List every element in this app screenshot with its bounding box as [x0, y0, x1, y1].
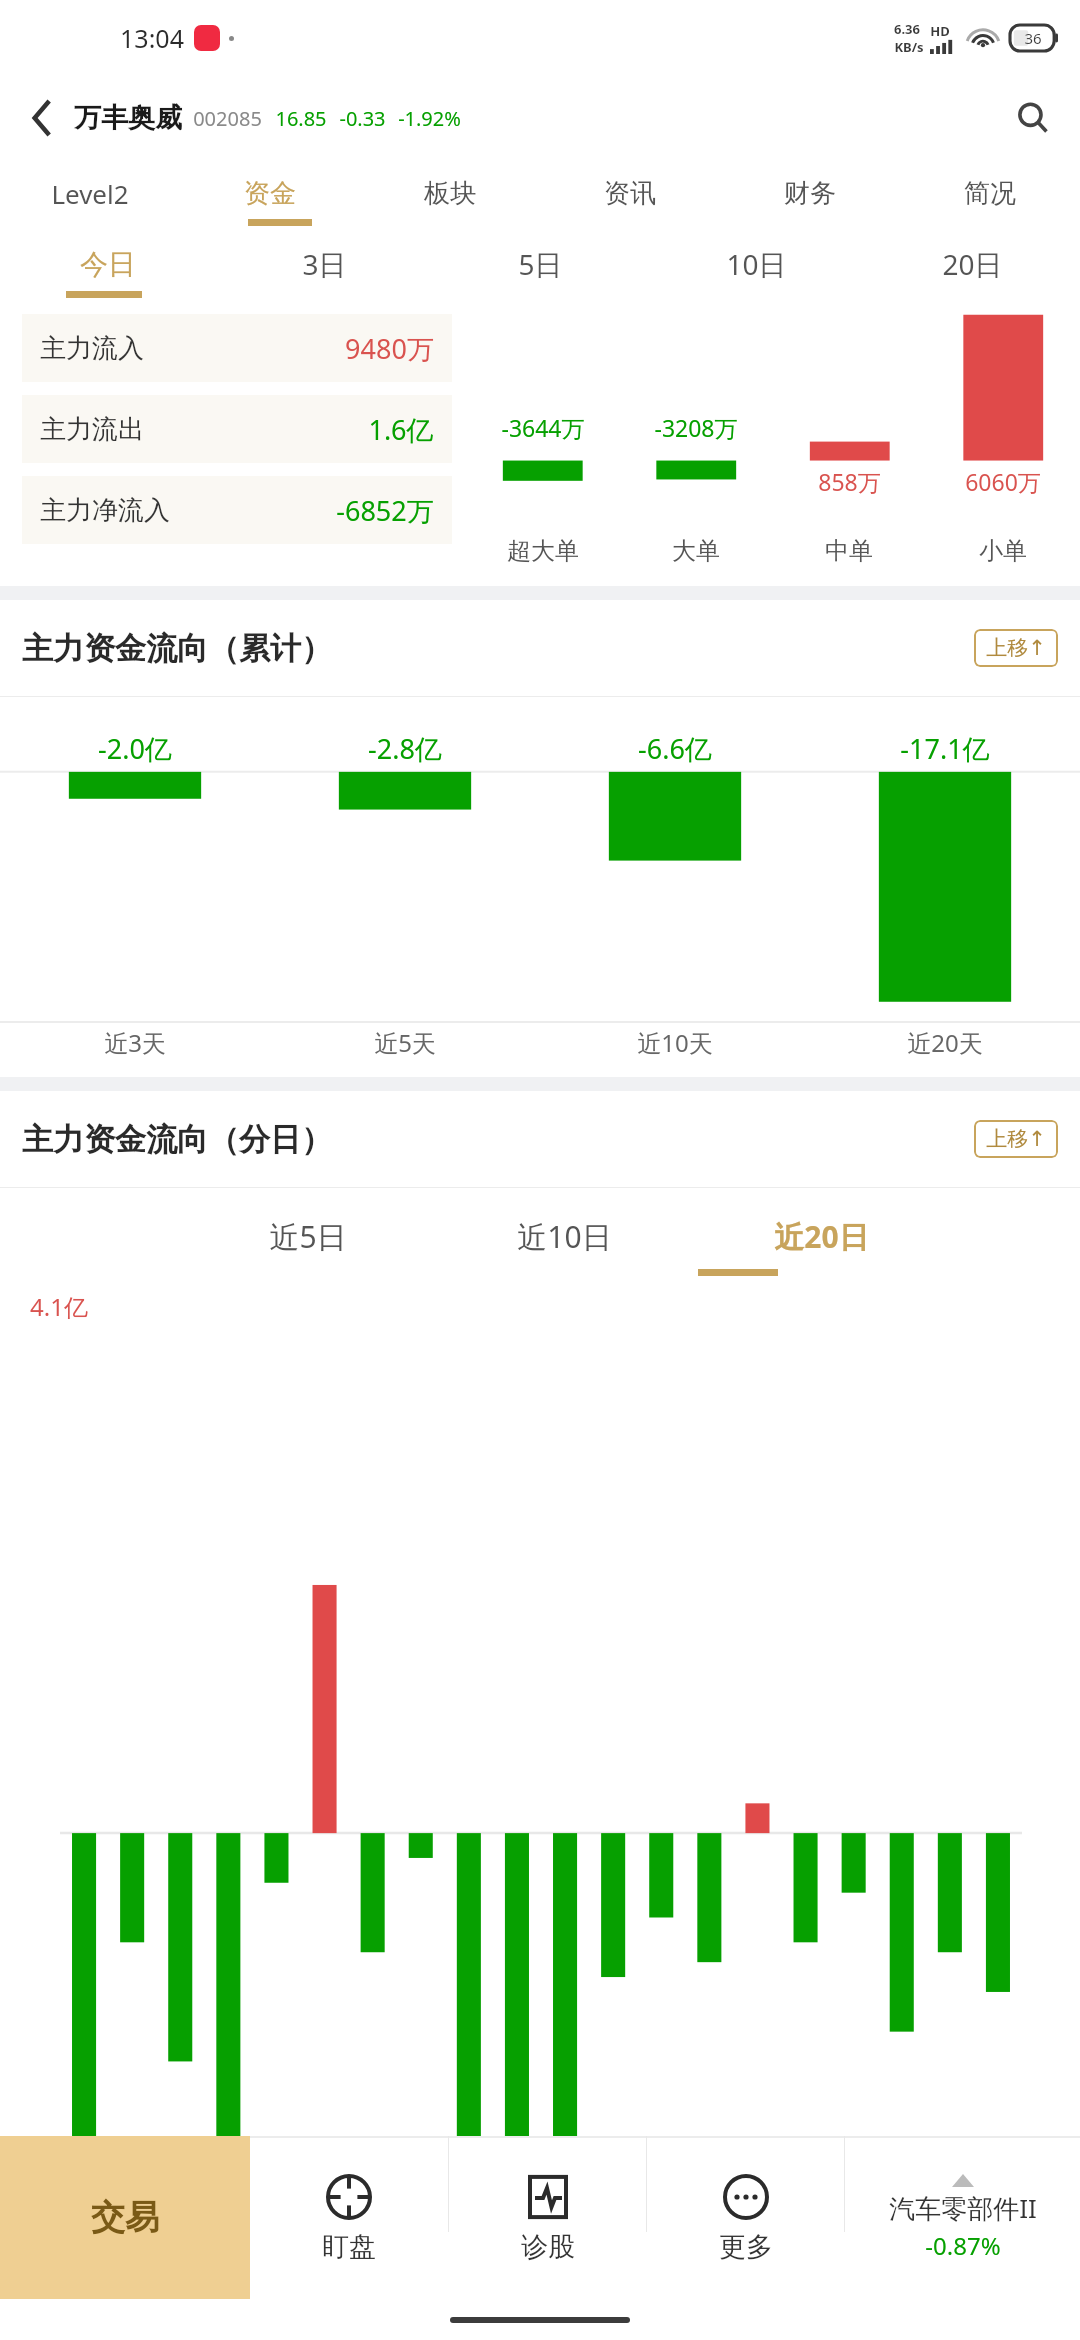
staticText: 汽车零部件II [889, 2190, 1037, 2226]
staticText: 主力资金流向（分日） [22, 1120, 332, 1159]
button[interactable]: Back [20, 95, 66, 141]
staticText: 13:04 [120, 21, 184, 55]
staticText: -0.33 [339, 105, 386, 132]
staticText: 858万 [818, 466, 881, 497]
button[interactable]: 财务 [720, 160, 900, 226]
button[interactable]: 资讯 [540, 160, 720, 226]
staticText: 万丰奥威 [74, 101, 182, 135]
staticText: 小单 [979, 536, 1027, 566]
staticText: -3644万 [501, 412, 585, 443]
button[interactable]: 近20日 [693, 1188, 950, 1284]
staticText: 今日 [80, 247, 136, 282]
staticText: 上移↑ [986, 635, 1046, 661]
staticText: 4.1亿 [30, 1290, 88, 1323]
button[interactable]: 近10日 [436, 1188, 693, 1284]
staticText: 3日 [302, 245, 347, 283]
staticText: 板块 [424, 177, 476, 210]
button[interactable]: 主力流出 [40, 395, 434, 463]
staticText: 16.85 [275, 105, 327, 132]
staticText: 资金 [244, 177, 296, 210]
button[interactable]: 资金 [180, 160, 360, 226]
staticText: 1.6亿 [368, 411, 434, 448]
staticText: 诊股 [521, 2230, 575, 2264]
button[interactable]: 5日 [432, 226, 648, 302]
staticText: 交易 [91, 2196, 159, 2239]
button[interactable]: -3208万 [619, 308, 772, 578]
staticText: 6060万 [965, 466, 1041, 497]
staticText: 财务 [784, 177, 836, 210]
staticText: 上移↑ [986, 1126, 1046, 1152]
staticText: -2.0亿 [98, 730, 172, 767]
button[interactable]: 简况 [900, 160, 1080, 226]
staticText: 9480万 [345, 330, 434, 367]
staticText: 近5天 [374, 1026, 436, 1059]
staticText: -17.1亿 [900, 730, 990, 767]
staticText: 6.36 [894, 20, 920, 38]
button[interactable]: 交易 [0, 2136, 250, 2299]
staticText: 近10日 [517, 1216, 612, 1257]
staticText: -1.92% [398, 105, 461, 132]
button[interactable]: -6.6亿 [540, 697, 810, 1077]
button[interactable]: 上移↑ [986, 1126, 1046, 1152]
button[interactable]: 858万 [772, 308, 926, 578]
staticText: 主力净流入 [40, 494, 170, 527]
staticText: HD [930, 22, 950, 40]
staticText: 10日 [726, 245, 787, 283]
button[interactable]: -17.1亿 [810, 697, 1080, 1077]
staticText: 5日 [518, 245, 563, 283]
staticText: -3208万 [654, 412, 738, 443]
staticText: 近20日 [774, 1216, 869, 1257]
button[interactable]: 主力流入 [40, 314, 434, 382]
button[interactable]: -3644万 [466, 308, 619, 578]
button[interactable]: Search [1006, 91, 1060, 145]
staticText: 中单 [825, 536, 873, 566]
staticText: KB/s [894, 38, 924, 56]
staticText: 20日 [942, 245, 1003, 283]
staticText: 主力流入 [40, 332, 144, 365]
staticText: 主力资金流向（累计） [22, 629, 332, 668]
button[interactable]: 汽车零部件II [845, 2136, 1080, 2299]
staticText: 近3天 [104, 1026, 166, 1059]
staticText: -6852万 [336, 492, 434, 529]
button[interactable]: 板块 [360, 160, 540, 226]
staticText: 主力流出 [40, 413, 144, 446]
staticText: 近20天 [907, 1026, 983, 1059]
button[interactable]: 主力净流入 [40, 476, 434, 544]
staticText: 盯盘 [322, 2230, 376, 2264]
button[interactable]: -2.8亿 [270, 697, 540, 1077]
button[interactable]: 诊股 [449, 2136, 646, 2299]
staticText: 超大单 [507, 536, 579, 566]
staticText: -2.8亿 [368, 730, 442, 767]
staticText: 近5日 [269, 1216, 347, 1257]
button[interactable]: 20日 [864, 226, 1080, 302]
button[interactable]: 10日 [648, 226, 864, 302]
staticText: -6.6亿 [638, 730, 712, 767]
staticText: 更多 [719, 2230, 773, 2264]
button[interactable]: Level2 [0, 160, 180, 226]
staticText: Level2 [51, 176, 129, 211]
button[interactable]: 近5日 [180, 1188, 436, 1284]
staticText: 002085 [193, 105, 262, 132]
button[interactable]: 更多 [647, 2136, 844, 2299]
staticText: 大单 [672, 536, 720, 566]
staticText: 简况 [964, 177, 1016, 210]
staticText: -0.87% [925, 2229, 1001, 2262]
staticText: 近10天 [637, 1026, 713, 1059]
button[interactable]: 6060万 [926, 308, 1080, 578]
button[interactable]: 盯盘 [250, 2136, 448, 2299]
button[interactable]: 3日 [216, 226, 432, 302]
staticText: 资讯 [604, 177, 656, 210]
button[interactable]: 上移↑ [986, 635, 1046, 661]
button[interactable]: 今日 [0, 226, 216, 302]
staticText: 36 [1024, 28, 1042, 48]
button[interactable]: -2.0亿 [0, 697, 270, 1077]
